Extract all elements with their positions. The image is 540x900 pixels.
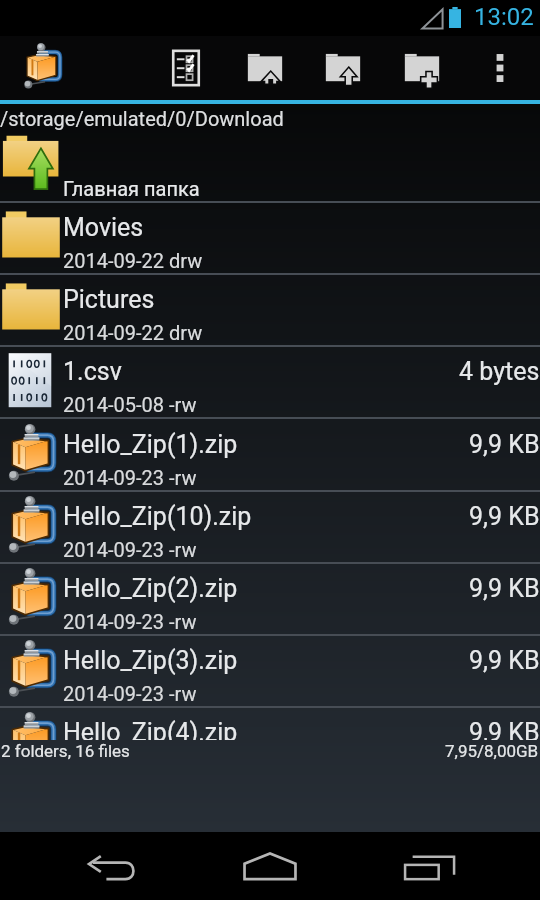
- button[interactable]: Hello_Zip(1).zip: [0, 419, 540, 492]
- button[interactable]: Back: [68, 832, 156, 900]
- staticText: Hello_Zip(1).zip: [63, 430, 238, 459]
- staticText: 9,9 KB: [469, 502, 540, 531]
- staticText: 9,9 KB: [469, 718, 540, 740]
- staticText: 2014-09-23 -rw: [63, 610, 197, 633]
- button[interactable]: Hello_Zip(4).zip: [0, 707, 540, 740]
- staticText: Movies: [63, 213, 144, 242]
- staticText: 2014-09-23 -rw: [63, 682, 197, 705]
- button[interactable]: Parent folder: [309, 36, 377, 100]
- staticText: 2014-05-08 -rw: [63, 393, 197, 416]
- button[interactable]: AndroZip: [3, 36, 81, 100]
- staticText: 1.csv: [63, 357, 122, 386]
- button[interactable]: Hello_Zip(10).zip: [0, 491, 540, 564]
- button[interactable]: Главная папка: [0, 130, 540, 203]
- staticText: 9,9 KB: [469, 646, 540, 675]
- button[interactable]: Movies: [0, 202, 540, 275]
- button[interactable]: Pictures: [0, 274, 540, 347]
- button[interactable]: 1.csv: [0, 346, 540, 419]
- button[interactable]: Home folder: [231, 36, 299, 100]
- staticText: 9,9 KB: [469, 430, 540, 459]
- staticText: 9,9 KB: [469, 574, 540, 603]
- staticText: 2014-09-22 drw: [63, 249, 203, 272]
- button[interactable]: Select items: [152, 36, 220, 100]
- button[interactable]: Hello_Zip(3).zip: [0, 635, 540, 708]
- staticText: Главная папка: [63, 177, 200, 200]
- staticText: /storage/emulated/0/Download: [0, 107, 284, 130]
- staticText: 7,95/8,00GB: [445, 741, 539, 761]
- button[interactable]: Hello_Zip(2).zip: [0, 563, 540, 636]
- staticText: 13:02: [474, 3, 534, 31]
- staticText: Pictures: [63, 285, 155, 314]
- staticText: 2 folders, 16 files: [1, 741, 130, 761]
- staticText: 2014-09-22 drw: [63, 321, 203, 344]
- staticText: 4 bytes: [459, 357, 540, 386]
- staticText: Hello_Zip(10).zip: [63, 502, 252, 531]
- staticText: 2014-09-23 -rw: [63, 538, 197, 561]
- staticText: Hello_Zip(2).zip: [63, 574, 238, 603]
- staticText: Hello_Zip(4).zip: [63, 718, 238, 740]
- button[interactable]: Recents: [386, 832, 474, 900]
- staticText: 2014-09-23 -rw: [63, 466, 197, 489]
- button[interactable]: Home: [226, 832, 314, 900]
- button[interactable]: More options: [466, 36, 534, 100]
- staticText: Hello_Zip(3).zip: [63, 646, 238, 675]
- button[interactable]: New folder: [388, 36, 456, 100]
